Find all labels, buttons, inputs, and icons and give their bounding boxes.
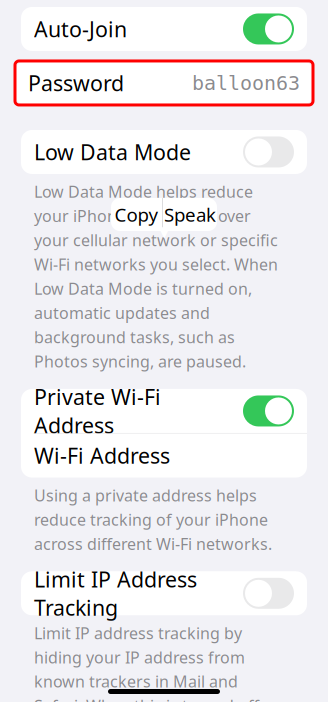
staticText: balloon63 xyxy=(192,72,300,94)
staticText: Low Data Mode helps reduce your iPhone d… xyxy=(34,181,278,372)
staticText: Limit IP address tracking by hiding your… xyxy=(34,622,270,702)
button[interactable]: Low Data Mode xyxy=(21,130,307,174)
staticText: Limit IP Address Tracking xyxy=(34,565,197,622)
staticText: Copy xyxy=(114,202,158,227)
staticText: Auto-Join xyxy=(34,15,127,43)
staticText: Using a private address helps reduce tra… xyxy=(34,485,272,554)
button[interactable]: Speak xyxy=(163,198,217,231)
button[interactable]: Wi-Fi Address xyxy=(21,434,307,478)
button[interactable]: Copy xyxy=(111,198,162,231)
staticText: Low Data Mode xyxy=(34,138,191,166)
staticText: ▾ xyxy=(158,218,169,244)
staticText: Private Wi-Fi Address xyxy=(34,383,161,439)
staticText: Wi-Fi Address xyxy=(34,441,170,470)
button[interactable]: Password xyxy=(15,61,313,105)
button[interactable]: Auto-Join xyxy=(21,7,307,51)
staticText: Speak xyxy=(164,202,216,227)
button[interactable]: Private Wi-Fi Address xyxy=(21,389,307,433)
staticText: Password xyxy=(28,69,124,97)
button[interactable]: Limit IP Address Tracking xyxy=(21,571,307,615)
